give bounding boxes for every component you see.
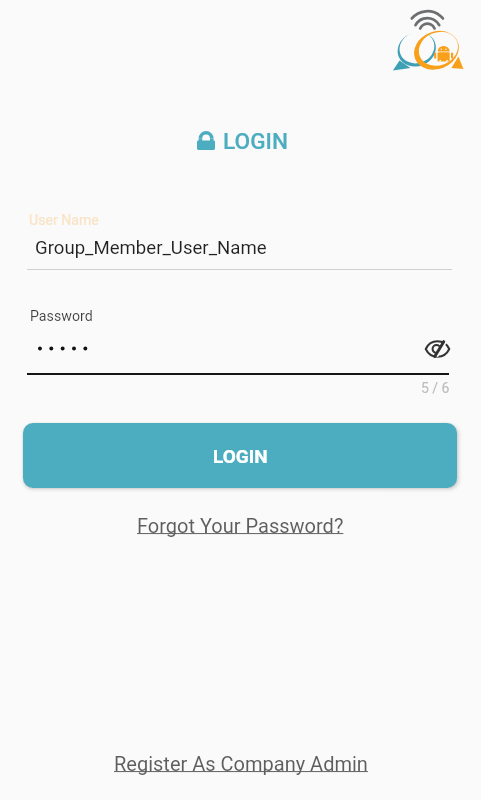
button[interactable]: LOGIN [23,423,457,488]
staticText: User Name [29,212,99,229]
staticText: Password [30,308,93,325]
staticText: LOGIN [213,445,268,467]
staticText: Register As Company Admin [114,752,368,775]
staticText: Group_Member_User_Name [35,237,267,259]
staticText: 5 / 6 [421,380,450,396]
staticText: LOGIN [223,128,288,154]
staticText: Forgot Your Password? [137,514,344,537]
button[interactable]: Show password [420,334,454,364]
button[interactable]: Register As Company Admin [114,752,368,775]
button[interactable]: Forgot Your Password? [137,514,344,537]
